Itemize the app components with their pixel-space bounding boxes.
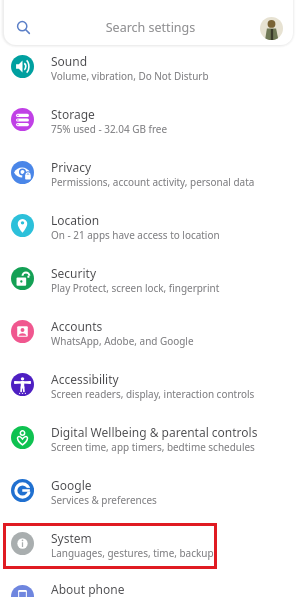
staticText: Security [51, 265, 97, 281]
button[interactable]: Security [0, 252, 296, 305]
staticText: Volume, vibration, Do Not Disturb [51, 69, 209, 83]
staticText: WhatsApp, Adobe, and Google [51, 334, 194, 348]
staticText: Screen readers, display, interaction con… [51, 387, 255, 401]
staticText: Storage [51, 106, 95, 122]
button[interactable]: Search [0, 1, 44, 55]
staticText: System [51, 530, 92, 546]
button[interactable]: Accounts [0, 305, 296, 358]
staticText: Privacy [51, 159, 92, 175]
staticText: Permissions, account activity, personal … [51, 175, 255, 189]
button[interactable]: Location [0, 199, 296, 252]
staticText: Services & preferences [51, 493, 157, 507]
staticText: Accounts [51, 318, 103, 334]
button[interactable]: Google [0, 464, 296, 517]
staticText: Accessibility [51, 371, 119, 387]
button[interactable]: Account [249, 1, 296, 55]
staticText: Sound [51, 53, 88, 69]
staticText: Location [51, 212, 100, 228]
staticText: Google [51, 477, 92, 493]
staticText: Digital Wellbeing & parental controls [51, 424, 258, 440]
button[interactable]: Storage [0, 93, 296, 146]
staticText: Search settings [48, 19, 253, 36]
button[interactable]: Accessibility [0, 358, 296, 411]
button[interactable]: Sound [0, 40, 296, 93]
button[interactable]: Privacy [0, 146, 296, 199]
staticText: Play Protect, screen lock, fingerprint [51, 281, 220, 295]
staticText: On - 21 apps have access to location [51, 228, 220, 242]
button[interactable]: Digital Wellbeing & parental controls [0, 411, 296, 464]
staticText: Screen time, app timers, bedtime schedul… [51, 440, 255, 454]
button[interactable]: About phone [0, 570, 296, 597]
staticText: About phone [51, 581, 125, 597]
staticText: Languages, gestures, time, backup [51, 546, 214, 560]
button[interactable]: System [0, 517, 296, 570]
staticText: 75% used - 32.04 GB free [51, 122, 167, 136]
button[interactable] [4, 0, 293, 45]
